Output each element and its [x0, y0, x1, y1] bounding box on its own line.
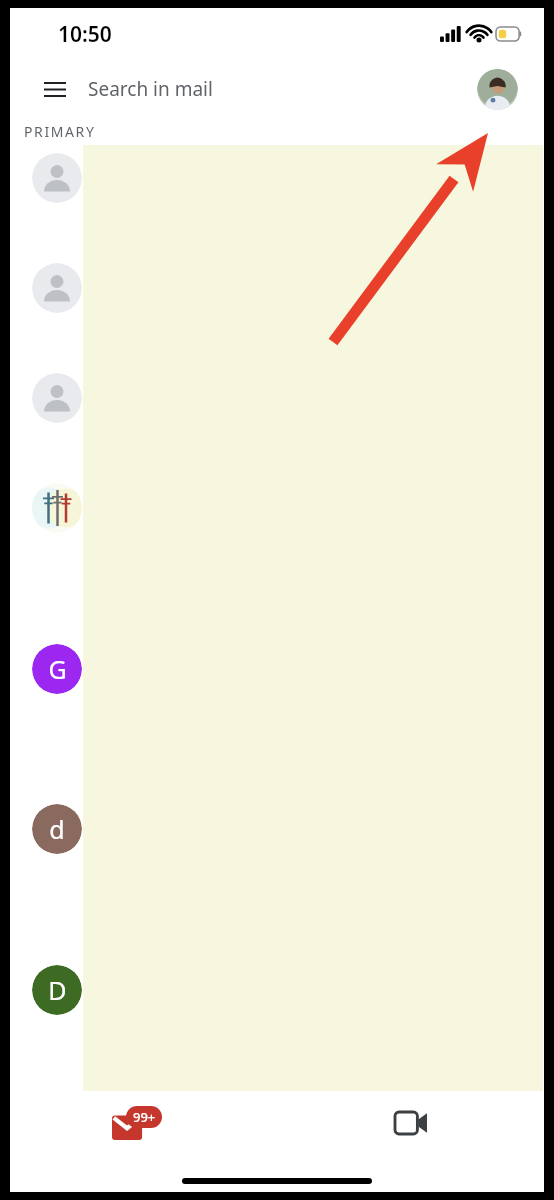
button[interactable]: Sender avatar	[32, 263, 82, 313]
button[interactable]: Sender avatar	[32, 483, 82, 533]
staticText: d	[49, 812, 65, 846]
staticText: 99+	[133, 1108, 156, 1126]
button[interactable]: Open navigation menu	[20, 60, 534, 118]
button[interactable]: Mail, 99+ unread	[10, 1091, 277, 1155]
button[interactable]: Sender avatar	[32, 804, 82, 854]
button[interactable]: Sender avatar	[32, 373, 82, 423]
button[interactable]: Account profile	[477, 69, 518, 110]
button[interactable]: Sender avatar	[32, 965, 82, 1015]
staticText: G	[48, 652, 67, 686]
staticText: D	[48, 973, 67, 1007]
button[interactable]: Open navigation menu	[36, 70, 74, 108]
button[interactable]: Meet	[277, 1091, 544, 1155]
staticText: Search in mail	[88, 76, 213, 102]
staticText: PRIMARY	[24, 122, 96, 141]
button[interactable]: Sender avatar	[32, 153, 82, 203]
button[interactable]: Sender avatar	[32, 644, 82, 694]
staticText: 10:50	[58, 20, 112, 49]
button[interactable]	[83, 145, 543, 1091]
